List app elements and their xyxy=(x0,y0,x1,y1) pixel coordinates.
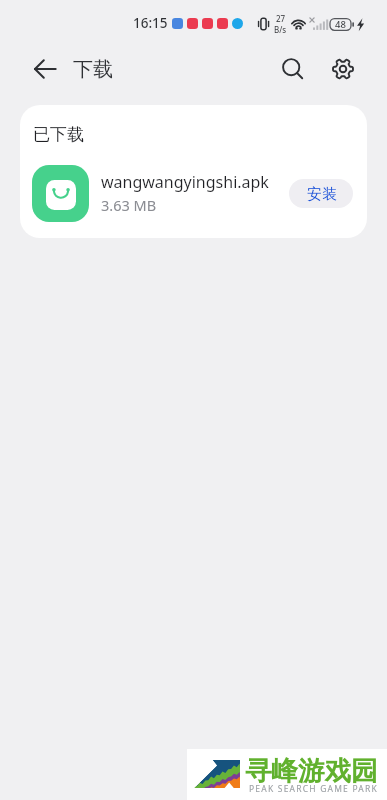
button[interactable]: Back xyxy=(22,46,68,92)
staticText: PEAK SEARCH GAME PARK xyxy=(249,783,378,795)
button[interactable]: Search xyxy=(274,50,312,88)
staticText: B/s xyxy=(274,24,287,35)
staticText: 48 xyxy=(335,18,346,31)
staticText: 安装 xyxy=(307,185,337,204)
staticText: 27 xyxy=(276,13,286,24)
staticText: 16:15 xyxy=(133,14,168,32)
staticText: 寻峰游戏园 xyxy=(245,754,378,787)
staticText: 3.63 MB xyxy=(101,195,157,215)
staticText: wangwangyingshi.apk xyxy=(101,171,269,193)
button[interactable]: 安装 xyxy=(289,179,353,208)
staticText: 下载 xyxy=(73,57,113,82)
button[interactable]: Settings xyxy=(323,49,362,88)
staticText: 已下载 xyxy=(33,124,84,145)
